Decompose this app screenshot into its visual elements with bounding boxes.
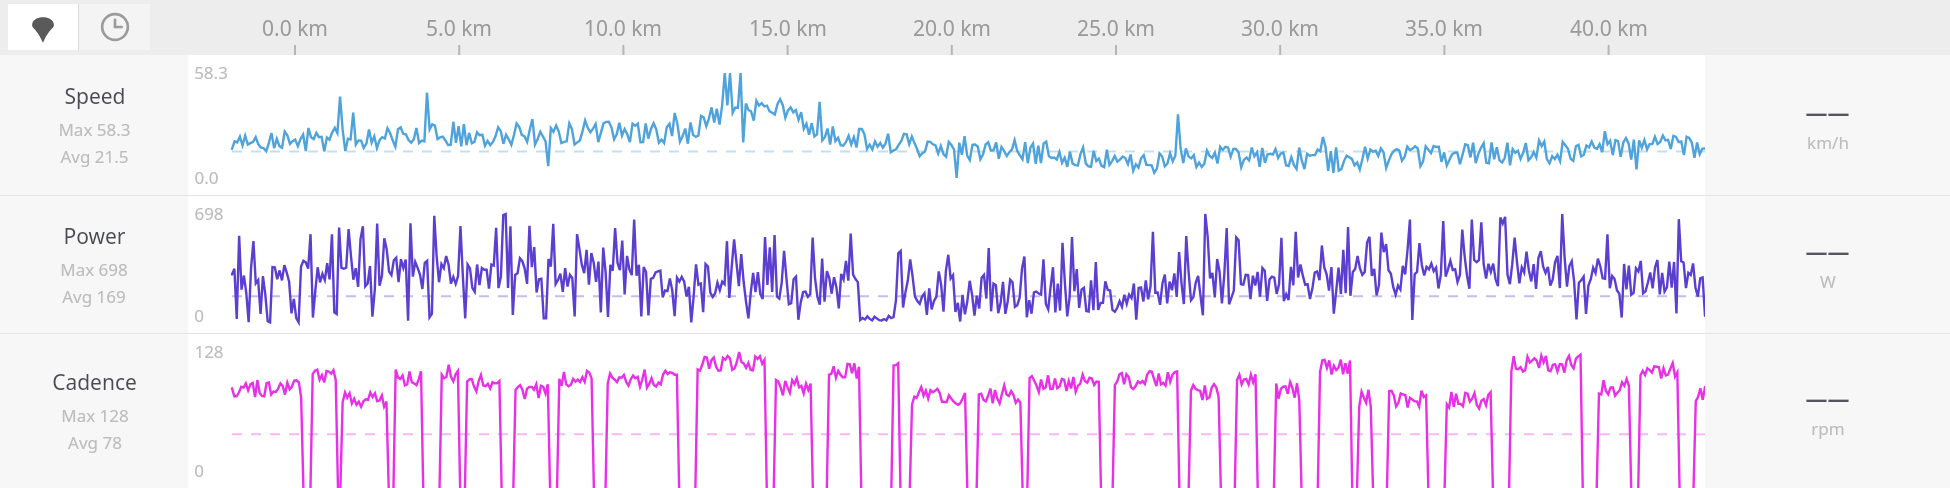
staticText: 0 [194, 304, 204, 327]
staticText: Avg 78 [68, 431, 122, 454]
staticText: 58.3 [194, 61, 228, 84]
button[interactable]: Show by distance [8, 4, 78, 50]
staticText: Power [63, 222, 126, 251]
button[interactable]: 698 [188, 196, 1705, 333]
staticText: km/h [1807, 131, 1849, 154]
staticText: Avg 169 [62, 285, 126, 308]
button[interactable]: —— [1705, 55, 1950, 195]
button[interactable]: —— [1705, 334, 1950, 488]
staticText: —— [1805, 383, 1850, 413]
staticText: 0.0 km [235, 14, 355, 43]
button[interactable]: Power [0, 196, 188, 333]
button[interactable]: 58.3 [188, 55, 1705, 195]
button[interactable]: 128 [188, 334, 1705, 488]
staticText: 40.0 km [1549, 14, 1669, 43]
staticText: rpm [1811, 417, 1845, 440]
staticText: W [1820, 270, 1836, 293]
staticText: Speed [64, 82, 126, 111]
staticText: 128 [194, 340, 224, 363]
button[interactable]: Speed [0, 55, 188, 195]
staticText: 20.0 km [892, 14, 1012, 43]
staticText: —— [1805, 236, 1850, 266]
staticText: —— [1805, 97, 1850, 127]
button[interactable]: Cadence [0, 334, 188, 488]
staticText: 30.0 km [1220, 14, 1340, 43]
staticText: Max 58.3 [58, 118, 131, 141]
staticText: 0 [194, 459, 204, 482]
staticText: 0.0 [194, 166, 219, 189]
staticText: Max 128 [61, 404, 129, 427]
staticText: Cadence [52, 368, 137, 397]
staticText: 10.0 km [563, 14, 683, 43]
staticText: 698 [194, 202, 224, 225]
staticText: 5.0 km [399, 14, 519, 43]
staticText: Avg 21.5 [60, 145, 129, 168]
staticText: Max 698 [60, 258, 128, 281]
button[interactable]: Show by time [79, 4, 150, 50]
staticText: 25.0 km [1056, 14, 1176, 43]
button[interactable]: —— [1705, 196, 1950, 333]
staticText: 15.0 km [728, 14, 848, 43]
staticText: 35.0 km [1384, 14, 1504, 43]
